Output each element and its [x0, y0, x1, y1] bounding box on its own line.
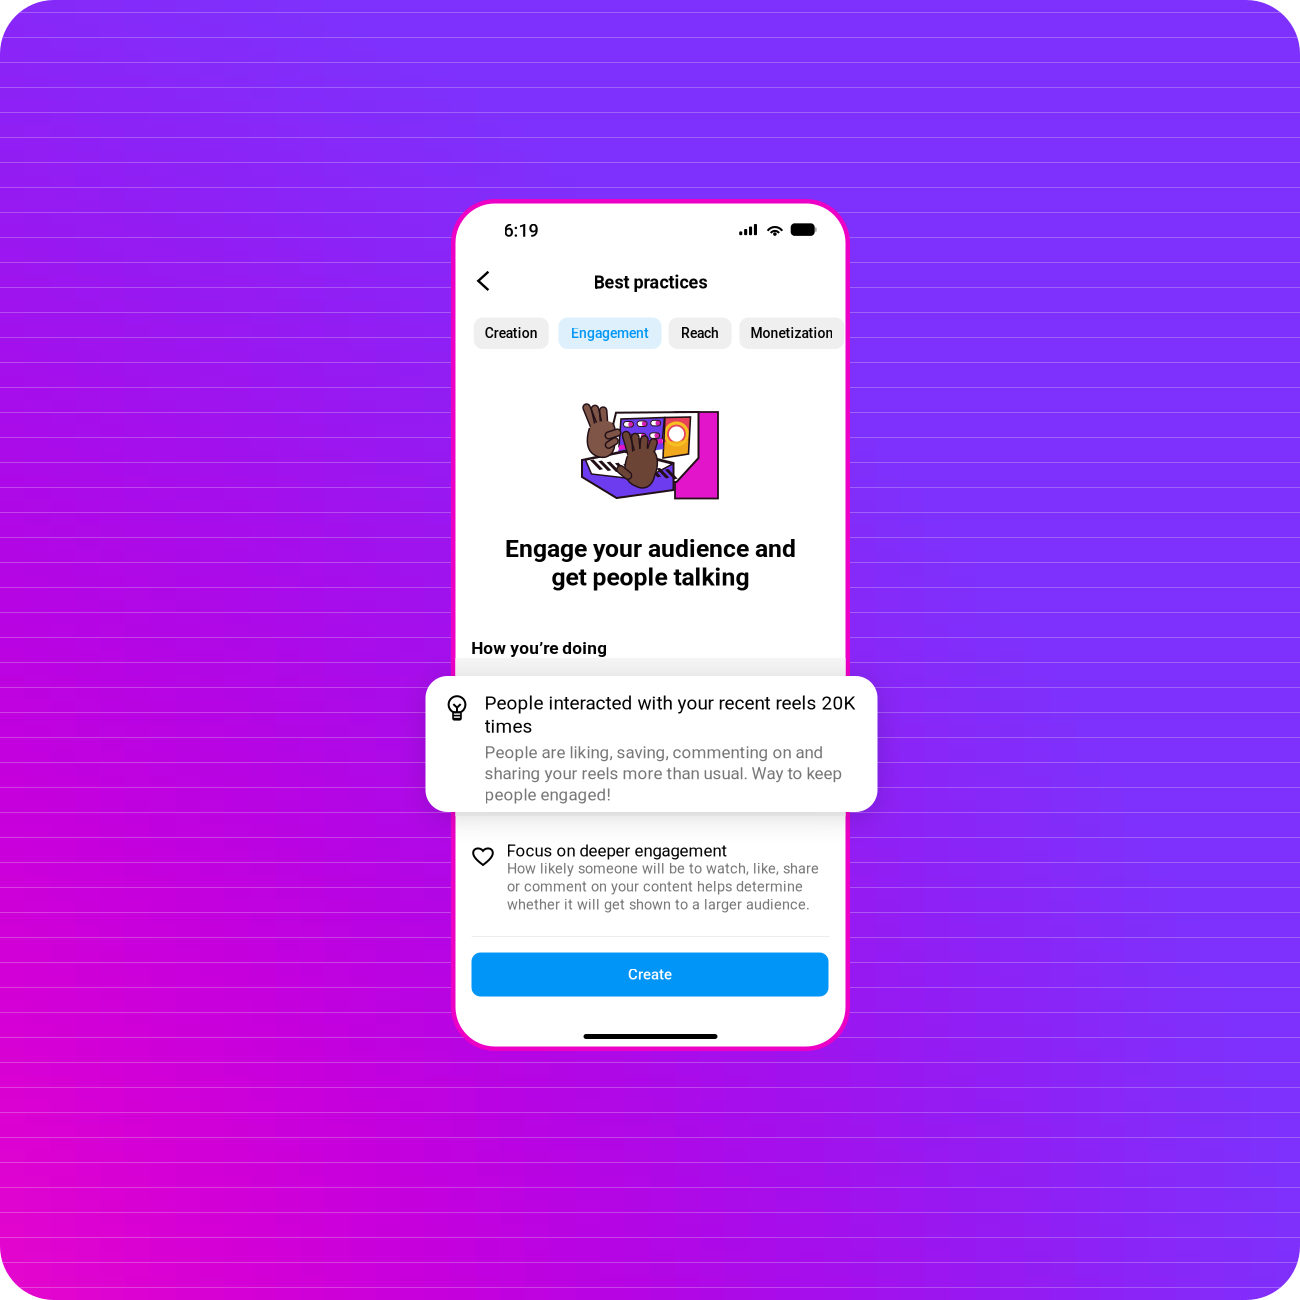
staticText: Create: [628, 966, 672, 983]
staticText: people engaged!: [484, 785, 610, 804]
button[interactable]: Creation: [474, 317, 549, 349]
button[interactable]: Reach: [669, 317, 732, 349]
staticText: Engage your audience and: [505, 534, 796, 563]
staticText: People are liking, saving, commenting on…: [484, 742, 823, 762]
staticText: People interacted with your recent reels…: [484, 692, 855, 714]
staticText: How you’re doing: [471, 638, 607, 658]
staticText: times: [484, 715, 532, 737]
staticText: Focus on deeper engagement: [506, 841, 726, 861]
staticText: 6:19: [503, 220, 538, 241]
staticText: Creation: [485, 325, 538, 341]
staticText: Engagement: [571, 325, 649, 341]
button[interactable]: Create: [471, 952, 828, 996]
staticText: sharing your reels more than usual. Way …: [484, 764, 842, 783]
staticText: How likely someone will be to watch, lik…: [507, 860, 819, 877]
staticText: or comment on your content helps determi…: [507, 878, 803, 895]
staticText: Best practices: [593, 272, 707, 293]
button[interactable]: Back: [467, 262, 501, 300]
staticText: whether it will get shown to a larger au…: [507, 896, 810, 913]
staticText: get people talking: [551, 562, 749, 591]
button[interactable]: Engagement: [558, 317, 661, 349]
staticText: Reach: [681, 325, 719, 341]
staticText: Monetization: [750, 325, 833, 341]
button[interactable]: Monetization: [739, 317, 844, 349]
